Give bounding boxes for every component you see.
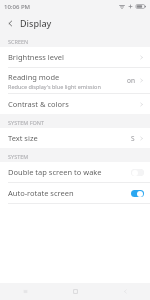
button[interactable]: Brightness level [0, 47, 150, 67]
button[interactable]: Off [131, 169, 144, 176]
button[interactable]: Text size [0, 128, 150, 148]
staticText: SYSTEM FONT [8, 119, 45, 126]
staticText: 10:06 PM [4, 3, 31, 11]
staticText: Reading mode [8, 72, 60, 82]
button[interactable]: Back [0, 13, 20, 33]
staticText: Auto-rotate screen [8, 188, 131, 198]
staticText: Contrast & colors [8, 99, 69, 109]
staticText: Display [20, 17, 52, 29]
button[interactable]: Double tap screen to wake [0, 162, 150, 182]
staticText: Double tap screen to wake [8, 167, 131, 177]
staticText: S [131, 134, 135, 143]
staticText: Brightness level [8, 52, 64, 62]
button[interactable]: Home [50, 283, 100, 300]
button[interactable]: On [131, 190, 144, 197]
button[interactable]: Auto-rotate screen [0, 183, 150, 203]
button[interactable]: Reading mode [0, 68, 150, 93]
staticText: on [127, 76, 135, 85]
button[interactable]: Contrast & colors [0, 94, 150, 114]
staticText: SYSTEM [8, 153, 29, 160]
staticText: Text size [8, 133, 38, 143]
staticText: Reduce display's blue light emission [8, 83, 101, 90]
staticText: SCREEN [8, 38, 29, 45]
